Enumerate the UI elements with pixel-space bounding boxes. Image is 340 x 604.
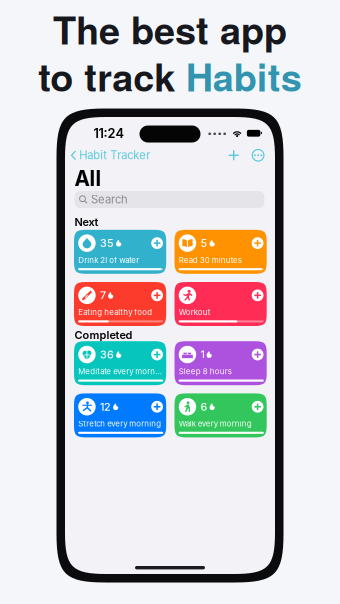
- staticText: 35: [100, 237, 114, 250]
- staticText: 7: [100, 289, 106, 302]
- staticText: Eating healthy food: [78, 307, 152, 317]
- staticText: ••••: [207, 128, 227, 138]
- staticText: Workout: [179, 307, 211, 317]
- staticText: 36: [100, 348, 114, 361]
- button[interactable]: 1: [174, 341, 267, 385]
- staticText: Meditate every morning: [78, 367, 163, 376]
- staticText: Habits: [186, 49, 302, 103]
- button[interactable]: 36: [74, 341, 166, 385]
- button[interactable]: Habit Tracker: [65, 146, 150, 165]
- staticText: 6: [200, 400, 207, 413]
- button[interactable]: 12: [74, 393, 166, 437]
- button[interactable]: Add habit: [226, 147, 242, 163]
- button[interactable]: 35: [74, 230, 166, 274]
- staticText: Read 30 minutes: [179, 255, 242, 265]
- button[interactable]: 7: [74, 282, 166, 326]
- staticText: Sleep 8 hours: [179, 367, 232, 376]
- button[interactable]: 5: [174, 230, 267, 274]
- staticText: The best app: [53, 2, 287, 56]
- staticText: 5: [200, 237, 207, 250]
- staticText: Drink 2l of water: [78, 255, 139, 265]
- staticText: Search: [91, 193, 128, 206]
- button[interactable]: Workout: [174, 282, 267, 326]
- staticText: 11:24: [93, 125, 124, 141]
- staticText: to track: [38, 49, 175, 103]
- staticText: Stretch every morning: [78, 419, 161, 428]
- button[interactable]: More options: [250, 147, 266, 164]
- staticText: 12: [100, 400, 111, 413]
- staticText: Next: [75, 215, 99, 229]
- staticText: Walk every morning: [179, 419, 252, 428]
- staticText: Habit Tracker: [79, 148, 150, 162]
- staticText: Completed: [75, 328, 133, 342]
- staticText: 1: [200, 348, 204, 361]
- staticText: All: [75, 166, 102, 191]
- button[interactable]: 6: [174, 393, 267, 437]
